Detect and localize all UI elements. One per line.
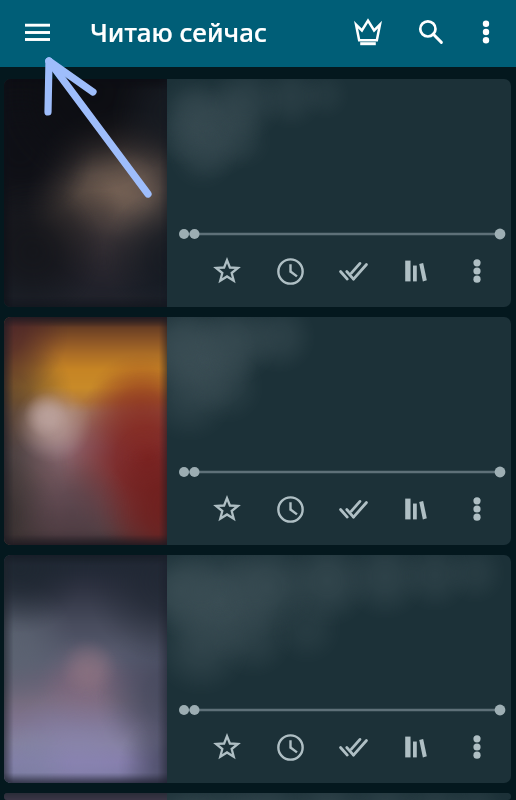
button[interactable]: Mark as read (330, 248, 376, 294)
button[interactable]: Read later (267, 486, 313, 532)
button[interactable]: Favorite (4, 317, 511, 545)
button[interactable]: Favorite (204, 486, 250, 532)
button[interactable]: Favorite (4, 79, 511, 307)
button[interactable]: Favorite (204, 248, 250, 294)
button[interactable]: Library (393, 724, 439, 770)
button[interactable]: Search (407, 8, 455, 56)
button[interactable]: Library (393, 248, 439, 294)
button[interactable]: Premium (344, 8, 392, 56)
button[interactable]: Favorite (4, 555, 511, 783)
button[interactable]: More (454, 486, 500, 532)
button[interactable]: Mark as read (330, 486, 376, 532)
button[interactable]: More (454, 724, 500, 770)
button[interactable]: More options (462, 8, 510, 56)
staticText: Читаю сейчас (90, 14, 267, 49)
button[interactable]: Menu (13, 8, 61, 56)
button[interactable]: Favorite (204, 724, 250, 770)
button[interactable]: Read later (267, 724, 313, 770)
button[interactable]: More (454, 248, 500, 294)
button[interactable]: Library (393, 486, 439, 532)
button[interactable]: Mark as read (330, 724, 376, 770)
button[interactable]: Favorite (4, 793, 511, 800)
button[interactable]: Read later (267, 248, 313, 294)
